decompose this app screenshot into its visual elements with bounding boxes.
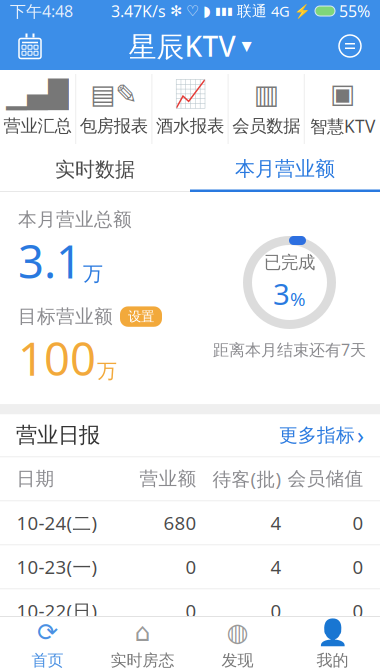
staticText: 智慧KTV — [310, 114, 375, 137]
staticText: 10-22(日) — [16, 598, 97, 623]
staticText: 10-24(二) — [16, 510, 97, 535]
staticText: ▮▮▮ — [215, 5, 233, 17]
staticText: ⌂ — [134, 618, 150, 647]
staticText: 更多指标 — [279, 424, 355, 447]
staticText: 4 — [270, 554, 281, 579]
staticText: 发现 — [221, 651, 253, 670]
staticText: 营业日报 — [16, 422, 100, 448]
staticText: 0 — [352, 510, 363, 535]
staticText: ▁▄█ — [6, 79, 69, 109]
staticText: 0 — [352, 554, 363, 579]
staticText: 万 — [83, 262, 103, 286]
button[interactable]: 星辰KTV — [118, 21, 261, 71]
staticText: 包房报表 — [80, 115, 148, 137]
staticText: 酒水报表 — [156, 115, 224, 137]
staticText: 3.1 — [18, 231, 82, 291]
staticText: 0 — [352, 598, 363, 623]
staticText: 首页 — [31, 651, 63, 670]
staticText: 星辰KTV — [128, 27, 235, 65]
staticText: ⟳ — [37, 618, 58, 647]
button[interactable]: ▣ — [305, 70, 380, 148]
staticText: 下午4:48 — [10, 0, 73, 22]
staticText: 实时房态 — [110, 651, 174, 670]
staticText: ♡ — [186, 3, 199, 19]
staticText: 营业汇总 — [4, 115, 72, 137]
staticText: 100 — [18, 328, 96, 388]
button[interactable]: 日历 — [8, 24, 52, 68]
staticText: ▣ — [330, 78, 355, 109]
staticText: ✻ — [170, 3, 182, 19]
staticText: 已完成 — [264, 252, 315, 273]
staticText: 日期 — [16, 467, 54, 490]
staticText: ▥ — [254, 79, 279, 109]
staticText: 3 — [273, 274, 290, 313]
button[interactable]: 设置 — [120, 306, 162, 327]
staticText: 3.47K/s — [111, 0, 166, 22]
staticText: 👤 — [316, 618, 348, 647]
staticText: 10-21(六) — [16, 642, 97, 667]
staticText: 0 — [185, 554, 196, 579]
staticText: 万 — [97, 359, 117, 383]
button[interactable]: ◍ — [190, 616, 285, 672]
staticText: ▼ — [241, 38, 251, 53]
button[interactable]: ▁▄█ — [0, 70, 75, 148]
staticText: 4 — [270, 510, 281, 535]
button[interactable]: ⌂ — [95, 616, 190, 672]
staticText: % — [290, 286, 306, 311]
staticText: 55% — [339, 0, 370, 22]
staticText: 0 — [185, 598, 196, 623]
button[interactable]: 📈 — [152, 70, 228, 148]
staticText: 营业额 — [139, 467, 196, 490]
staticText: 实时数据 — [55, 157, 135, 182]
staticText: 4G — [271, 1, 290, 21]
staticText: 会员储值 — [287, 467, 363, 490]
staticText: › — [357, 420, 364, 450]
staticText: 联通 — [237, 2, 267, 20]
staticText: 距离本月结束还有7天 — [213, 339, 366, 360]
button[interactable]: 实时数据 — [0, 148, 190, 192]
staticText: ⚡ — [294, 3, 311, 19]
staticText: 本月营业总额 — [18, 208, 132, 231]
button[interactable]: ▤✎ — [76, 70, 151, 148]
staticText: 目标营业额 — [18, 305, 113, 328]
staticText: 📈 — [173, 79, 206, 110]
button[interactable]: ▥ — [229, 70, 304, 148]
button[interactable]: 消息 — [328, 24, 372, 68]
staticText: 0 — [270, 598, 281, 623]
button[interactable]: 更多指标 — [279, 420, 364, 450]
button[interactable]: 本月营业额 — [190, 148, 380, 192]
staticText: 10-23(一) — [16, 554, 97, 579]
staticText: 会员数据 — [232, 115, 300, 137]
staticText: 待客(批) — [212, 466, 281, 491]
button[interactable]: 👤 — [285, 616, 380, 672]
staticText: ◍ — [226, 618, 248, 647]
button[interactable]: ⟳ — [0, 616, 95, 672]
staticText: 680 — [163, 510, 196, 535]
staticText: ◗ — [203, 3, 211, 19]
staticText: 设置 — [128, 308, 154, 325]
staticText: 本月营业额 — [235, 156, 335, 181]
staticText: ▤✎ — [90, 79, 137, 109]
staticText: 我的 — [316, 651, 348, 670]
